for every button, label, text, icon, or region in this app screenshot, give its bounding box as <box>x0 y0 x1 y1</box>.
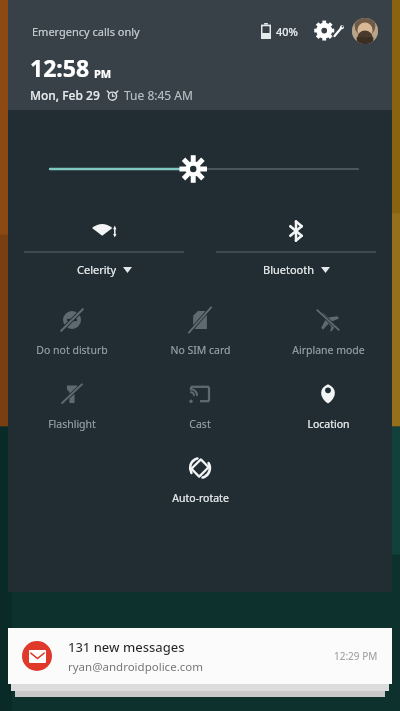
button[interactable]: Cast <box>136 377 264 433</box>
button[interactable]: Flashlight <box>8 377 136 433</box>
button[interactable]: No SIM card <box>136 303 264 359</box>
button[interactable]: Bluetooth <box>200 214 392 277</box>
staticText: Airplane mode <box>292 343 365 357</box>
button[interactable]: 131 new messages <box>8 628 392 684</box>
staticText: Auto-rotate <box>172 491 229 505</box>
button[interactable]: Do not disturb <box>8 303 136 359</box>
staticText: Location <box>307 417 350 431</box>
staticText: ryan@androidpolice.com <box>68 659 203 675</box>
staticText: Do not disturb <box>36 343 108 357</box>
staticText: 40% <box>276 24 298 39</box>
staticText: Celerity <box>77 262 117 277</box>
button[interactable]: Brightness <box>8 152 392 186</box>
staticText: Emergency calls only <box>32 24 140 39</box>
staticText: 12:58 <box>30 52 90 83</box>
staticText: 12:29 PM <box>334 649 378 663</box>
staticText: Cast <box>189 417 211 431</box>
staticText: 131 new messages <box>68 638 185 656</box>
button[interactable]: Location <box>264 377 392 433</box>
button[interactable]: Auto-rotate <box>136 451 264 507</box>
button[interactable]: Celerity <box>8 214 200 277</box>
staticText: Flashlight <box>48 417 96 431</box>
staticText: Bluetooth <box>263 262 315 277</box>
staticText: Tue 8:45 AM <box>124 87 193 103</box>
staticText: PM <box>94 66 112 81</box>
button[interactable]: Settings <box>312 20 346 42</box>
staticText: No SIM card <box>170 343 231 357</box>
button[interactable]: User profile <box>352 18 378 44</box>
staticText: Mon, Feb 29 <box>30 87 100 103</box>
button[interactable]: Airplane mode <box>264 303 392 359</box>
